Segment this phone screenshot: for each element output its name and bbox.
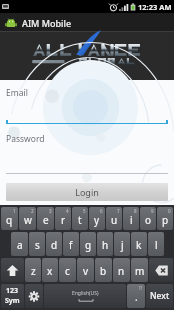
staticText: f <box>69 238 73 252</box>
staticText: t <box>78 213 82 227</box>
button[interactable]: 5 <box>72 207 88 230</box>
staticText: q <box>6 213 13 227</box>
staticText: k <box>136 238 142 252</box>
staticText: 7 <box>117 208 120 214</box>
button[interactable] <box>6 112 168 124</box>
staticText: b <box>100 264 107 278</box>
staticText: Next <box>150 290 170 302</box>
staticText: a <box>17 238 23 252</box>
button[interactable]: x <box>42 258 58 282</box>
staticText: Sym <box>5 296 20 306</box>
staticText: z <box>31 264 36 278</box>
button[interactable]: Shift <box>1 258 24 282</box>
staticText: 123 <box>6 286 19 296</box>
staticText: u <box>111 213 118 227</box>
button[interactable]: h <box>97 232 113 256</box>
staticText: p <box>162 213 169 227</box>
staticText: 8 <box>134 208 137 214</box>
button[interactable]: Space <box>44 284 126 308</box>
staticText: j <box>121 238 124 252</box>
staticText: Password <box>6 133 45 145</box>
button[interactable] <box>6 164 168 174</box>
staticText: n <box>118 264 125 278</box>
staticText: y <box>94 213 100 227</box>
button[interactable]: Login <box>6 183 168 201</box>
button[interactable]: Backspace <box>149 258 173 282</box>
button[interactable]: Settings <box>25 284 43 308</box>
button[interactable]: c <box>59 258 76 282</box>
button[interactable]: b <box>95 258 112 282</box>
staticText: s <box>35 238 40 252</box>
staticText: d <box>51 238 58 252</box>
staticText: 12:23 AM <box>138 2 172 12</box>
staticText: e <box>43 213 49 227</box>
button[interactable]: 1 <box>1 207 18 230</box>
button[interactable]: 0 <box>157 207 173 230</box>
button[interactable]: 3 <box>37 207 54 230</box>
staticText: . <box>135 290 138 304</box>
staticText: m <box>135 264 145 278</box>
staticText: 2 <box>31 208 34 214</box>
button[interactable]: d <box>46 232 62 256</box>
staticText: 4 <box>66 208 69 214</box>
button[interactable]: g <box>80 232 96 256</box>
button[interactable]: l <box>148 232 164 256</box>
staticText: l <box>155 238 158 252</box>
staticText: 9 <box>151 208 154 214</box>
staticText: 3 <box>49 208 52 214</box>
staticText: c <box>65 264 70 278</box>
button[interactable]: 9 <box>140 207 156 230</box>
button[interactable]: !? <box>127 284 145 308</box>
staticText: h <box>102 238 109 252</box>
staticText: AIM Mobile <box>22 17 72 29</box>
button[interactable]: 8 <box>123 207 139 230</box>
button[interactable]: m <box>131 258 148 282</box>
button[interactable]: f <box>63 232 79 256</box>
button[interactable]: k <box>131 232 147 256</box>
staticText: 0 <box>168 208 171 214</box>
button[interactable]: z <box>25 258 41 282</box>
staticText: r <box>61 213 66 227</box>
button[interactable]: s <box>29 232 45 256</box>
button[interactable]: 2 <box>19 207 36 230</box>
staticText: i <box>130 213 133 227</box>
button[interactable]: a <box>11 232 28 256</box>
staticText: o <box>145 213 152 227</box>
staticText: English(US) <box>72 290 99 297</box>
staticText: w <box>24 213 32 227</box>
button[interactable]: j <box>114 232 130 256</box>
button[interactable]: v <box>77 258 94 282</box>
staticText: v <box>83 264 89 278</box>
button[interactable]: 123 <box>1 284 24 308</box>
staticText: x <box>47 264 53 278</box>
button[interactable]: 6 <box>89 207 105 230</box>
staticText: Email <box>6 87 28 99</box>
staticText: Login <box>75 186 99 198</box>
button[interactable]: Next <box>146 284 173 308</box>
button[interactable]: n <box>113 258 130 282</box>
button[interactable]: 7 <box>106 207 122 230</box>
staticText: 1 <box>13 208 16 214</box>
button[interactable]: 4 <box>55 207 71 230</box>
staticText: g <box>85 238 92 252</box>
staticText: 5 <box>83 208 86 214</box>
staticText: 6 <box>100 208 103 214</box>
staticText: !? <box>139 285 143 291</box>
